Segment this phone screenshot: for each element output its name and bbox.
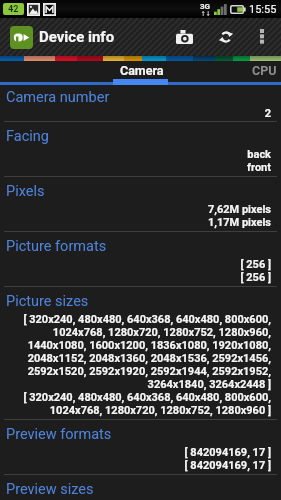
staticText: Facing — [6, 128, 49, 145]
staticText: 15:55 — [249, 3, 277, 16]
staticText: Preview formats — [6, 426, 112, 443]
staticText: [ 320x240, 480x480, 640x368, 640x480, 80… — [6, 313, 271, 417]
staticText: Picture formats — [6, 238, 107, 255]
staticText: Picture sizes — [6, 293, 89, 310]
button[interactable]: Preview formats — [0, 420, 281, 474]
button[interactable]: App icon — [10, 26, 33, 49]
staticText: Camera number — [6, 89, 110, 106]
staticText: 42 — [8, 4, 19, 15]
button[interactable]: Pixels — [0, 177, 281, 231]
staticText: 7,62M pixels 1,17M pixels — [6, 203, 271, 229]
button[interactable]: CPU — [248, 61, 281, 85]
button[interactable]: More options — [249, 18, 275, 56]
staticText: 2 — [6, 107, 271, 120]
button[interactable]: Preview sizes — [0, 475, 281, 498]
button[interactable]: Facing — [0, 122, 281, 176]
staticText: back front — [6, 148, 271, 174]
staticText: Pixels — [6, 183, 45, 200]
button[interactable]: Camera — [113, 61, 171, 85]
staticText: [ 256 ] [ 256 ] — [6, 258, 271, 284]
staticText: [ 842094169, 17 ] [ 842094169, 17 ] — [6, 446, 271, 472]
staticText: Device info — [39, 28, 115, 46]
button[interactable]: Refresh — [211, 18, 241, 56]
staticText: Preview sizes — [6, 481, 94, 498]
button[interactable]: Take photo — [167, 18, 201, 56]
button[interactable]: Camera number — [0, 85, 281, 121]
button[interactable]: Picture sizes — [0, 287, 281, 419]
button[interactable]: Picture formats — [0, 232, 281, 286]
staticText: CPU — [252, 63, 277, 78]
staticText: Camera — [120, 63, 164, 78]
staticText: 3G — [200, 2, 211, 11]
